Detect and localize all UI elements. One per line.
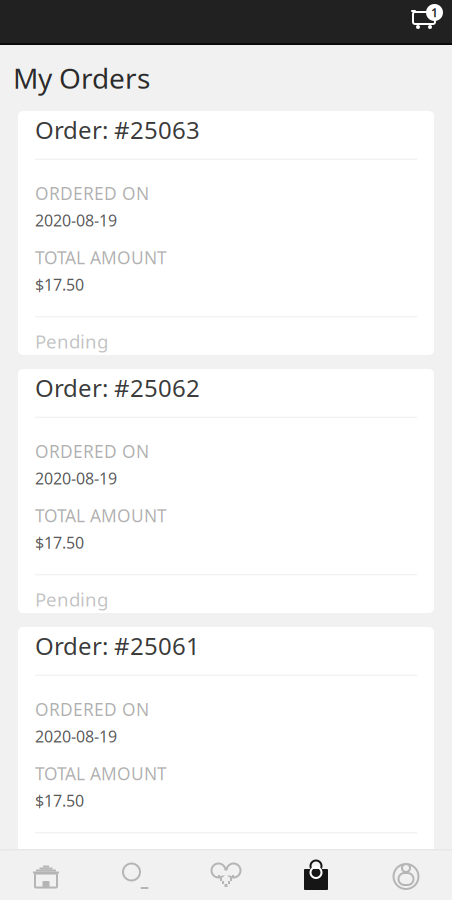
staticText: $17.50 xyxy=(35,274,84,295)
staticText: Order: #25061 xyxy=(35,630,200,662)
staticText: Order: #25062 xyxy=(35,372,200,404)
button[interactable]: Order: #25061 xyxy=(18,627,434,871)
staticText: Order: #25063 xyxy=(35,114,200,146)
staticText: Pending xyxy=(35,845,108,870)
button[interactable]: Cart, 1 item xyxy=(396,0,452,43)
button[interactable]: Account xyxy=(361,850,451,900)
button[interactable]: Order: #25062 xyxy=(18,369,434,613)
staticText: $17.50 xyxy=(35,790,84,811)
staticText: ORDERED ON xyxy=(35,182,149,205)
staticText: 2020-08-19 xyxy=(35,726,117,747)
staticText: TOTAL AMOUNT xyxy=(35,246,167,269)
staticText: ORDERED ON xyxy=(35,440,149,463)
button[interactable]: Order: #25063 xyxy=(18,111,434,355)
staticText: 2020-08-19 xyxy=(35,210,117,231)
staticText: 2020-08-19 xyxy=(35,468,117,489)
button[interactable]: Home xyxy=(1,850,91,900)
staticText: $17.50 xyxy=(35,532,84,553)
button[interactable]: Favorites xyxy=(181,850,271,900)
staticText: 1 xyxy=(431,4,438,20)
staticText: TOTAL AMOUNT xyxy=(35,762,167,785)
staticText: My Orders xyxy=(13,59,150,97)
staticText: Pending xyxy=(35,587,108,612)
button[interactable]: Orders xyxy=(271,850,361,900)
button[interactable]: Search xyxy=(91,850,181,900)
staticText: ORDERED ON xyxy=(35,698,149,721)
staticText: Pending xyxy=(35,329,108,354)
staticText: TOTAL AMOUNT xyxy=(35,504,167,527)
